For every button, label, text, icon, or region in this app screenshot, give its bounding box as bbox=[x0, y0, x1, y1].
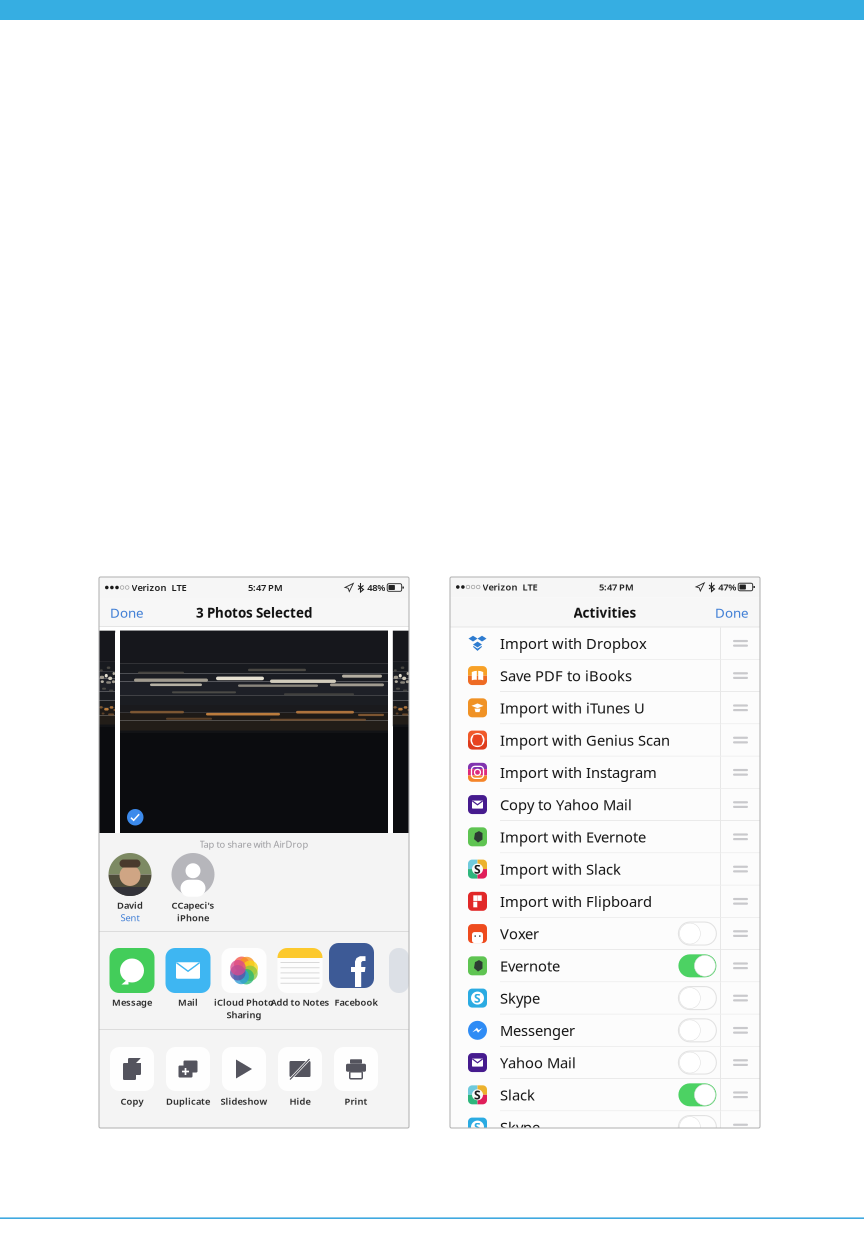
staticText: Save PDF to iBooks bbox=[500, 666, 632, 685]
staticText: David bbox=[117, 899, 143, 911]
button[interactable]: Done bbox=[108, 600, 146, 625]
button[interactable]: Voxer bbox=[450, 918, 760, 949]
button[interactable]: S bbox=[450, 853, 760, 885]
staticText: Copy bbox=[120, 1095, 143, 1107]
button[interactable]: Copy bbox=[104, 1047, 160, 1111]
button[interactable]: Import with Evernote bbox=[450, 821, 760, 853]
staticText: Skype bbox=[500, 1117, 540, 1137]
staticText: Import with Instagram bbox=[500, 763, 657, 782]
staticText: Hide bbox=[289, 1095, 310, 1107]
button[interactable]: Add to Notes bbox=[272, 948, 328, 1018]
staticText: LTE bbox=[171, 581, 186, 594]
staticText: Message bbox=[112, 996, 152, 1008]
staticText: CCapeci's bbox=[171, 899, 214, 911]
button[interactable]: Done bbox=[713, 600, 751, 625]
button[interactable]: Disabled bbox=[678, 1019, 716, 1042]
staticText: Verizon bbox=[131, 581, 166, 594]
button[interactable]: Slideshow bbox=[216, 1047, 272, 1111]
staticText: iPhone bbox=[177, 911, 209, 924]
staticText: Copy to Yahoo Mail bbox=[500, 795, 632, 814]
button[interactable]: Evernote bbox=[450, 950, 760, 982]
staticText: iCloud Photo bbox=[214, 996, 274, 1008]
button[interactable]: Import with Dropbox bbox=[450, 627, 760, 659]
button[interactable]: David bbox=[101, 853, 159, 925]
staticText: 3 Photos Selected bbox=[196, 604, 312, 621]
button[interactable]: Yahoo Mail bbox=[450, 1047, 760, 1078]
staticText: S bbox=[474, 1119, 481, 1135]
staticText: 5:47 PM bbox=[248, 581, 283, 594]
button[interactable]: Import with Flipboard bbox=[450, 885, 760, 917]
button[interactable]: Message bbox=[104, 948, 160, 1018]
staticText: Voxer bbox=[500, 924, 539, 943]
staticText: Slack bbox=[500, 1085, 535, 1105]
button[interactable]: Import with Genius Scan bbox=[450, 724, 760, 756]
staticText: Mail bbox=[178, 996, 198, 1008]
staticText: Tap to share with AirDrop bbox=[199, 838, 308, 850]
button[interactable]: CCapeci's bbox=[164, 853, 222, 925]
staticText: Messenger bbox=[500, 1021, 575, 1040]
button[interactable]: Facebook bbox=[328, 948, 384, 1018]
staticText: Import with Genius Scan bbox=[500, 730, 670, 750]
staticText: 5:47 PM bbox=[599, 581, 634, 593]
button[interactable]: Disabled bbox=[678, 987, 716, 1010]
staticText: Import with iTunes U bbox=[500, 698, 645, 718]
staticText: LTE bbox=[522, 581, 537, 593]
button[interactable]: Save PDF to iBooks bbox=[450, 660, 760, 691]
staticText: Sharing bbox=[226, 1008, 261, 1021]
staticText: 48% bbox=[367, 581, 385, 594]
button[interactable]: iCloud Photo bbox=[216, 948, 272, 1018]
staticText: Import with Dropbox bbox=[500, 634, 647, 653]
staticText: Skype bbox=[500, 988, 540, 1008]
button[interactable]: Disabled bbox=[678, 1116, 716, 1139]
button[interactable]: Enabled bbox=[678, 1083, 716, 1106]
staticText: Done bbox=[715, 604, 749, 621]
staticText: Add to Notes bbox=[270, 996, 329, 1008]
button[interactable]: S bbox=[450, 1079, 760, 1111]
staticText: Evernote bbox=[500, 956, 560, 976]
button[interactable]: Copy to Yahoo Mail bbox=[450, 789, 760, 820]
button[interactable]: Mail bbox=[160, 948, 216, 1018]
staticText: Import with Evernote bbox=[500, 827, 646, 847]
staticText: Duplicate bbox=[166, 1095, 210, 1107]
button[interactable]: S bbox=[450, 1111, 760, 1143]
staticText: Yahoo Mail bbox=[500, 1053, 576, 1072]
staticText: S bbox=[474, 861, 481, 877]
button[interactable]: S bbox=[450, 982, 760, 1014]
staticText: Print bbox=[344, 1095, 367, 1107]
staticText: Done bbox=[110, 604, 144, 621]
button[interactable]: Enabled bbox=[678, 954, 716, 977]
button[interactable]: Disabled bbox=[678, 922, 716, 945]
staticText: 47% bbox=[718, 581, 736, 593]
button[interactable]: Print bbox=[328, 1047, 384, 1111]
staticText: Sent bbox=[120, 911, 139, 924]
staticText: S bbox=[474, 1087, 481, 1103]
button[interactable]: Import with iTunes U bbox=[450, 692, 760, 724]
button[interactable]: Duplicate bbox=[160, 1047, 216, 1111]
button[interactable]: Disabled bbox=[678, 1051, 716, 1074]
button[interactable]: Import with Instagram bbox=[450, 756, 760, 788]
staticText: Verizon bbox=[482, 581, 517, 593]
staticText: Facebook bbox=[334, 996, 377, 1008]
staticText: Import with Slack bbox=[500, 859, 621, 879]
staticText: S bbox=[474, 990, 481, 1006]
button[interactable]: Hide bbox=[272, 1047, 328, 1111]
button[interactable]: Messenger bbox=[450, 1014, 760, 1046]
staticText: Activities bbox=[573, 604, 636, 621]
staticText: Slideshow bbox=[220, 1095, 267, 1107]
staticText: Import with Flipboard bbox=[500, 892, 652, 911]
